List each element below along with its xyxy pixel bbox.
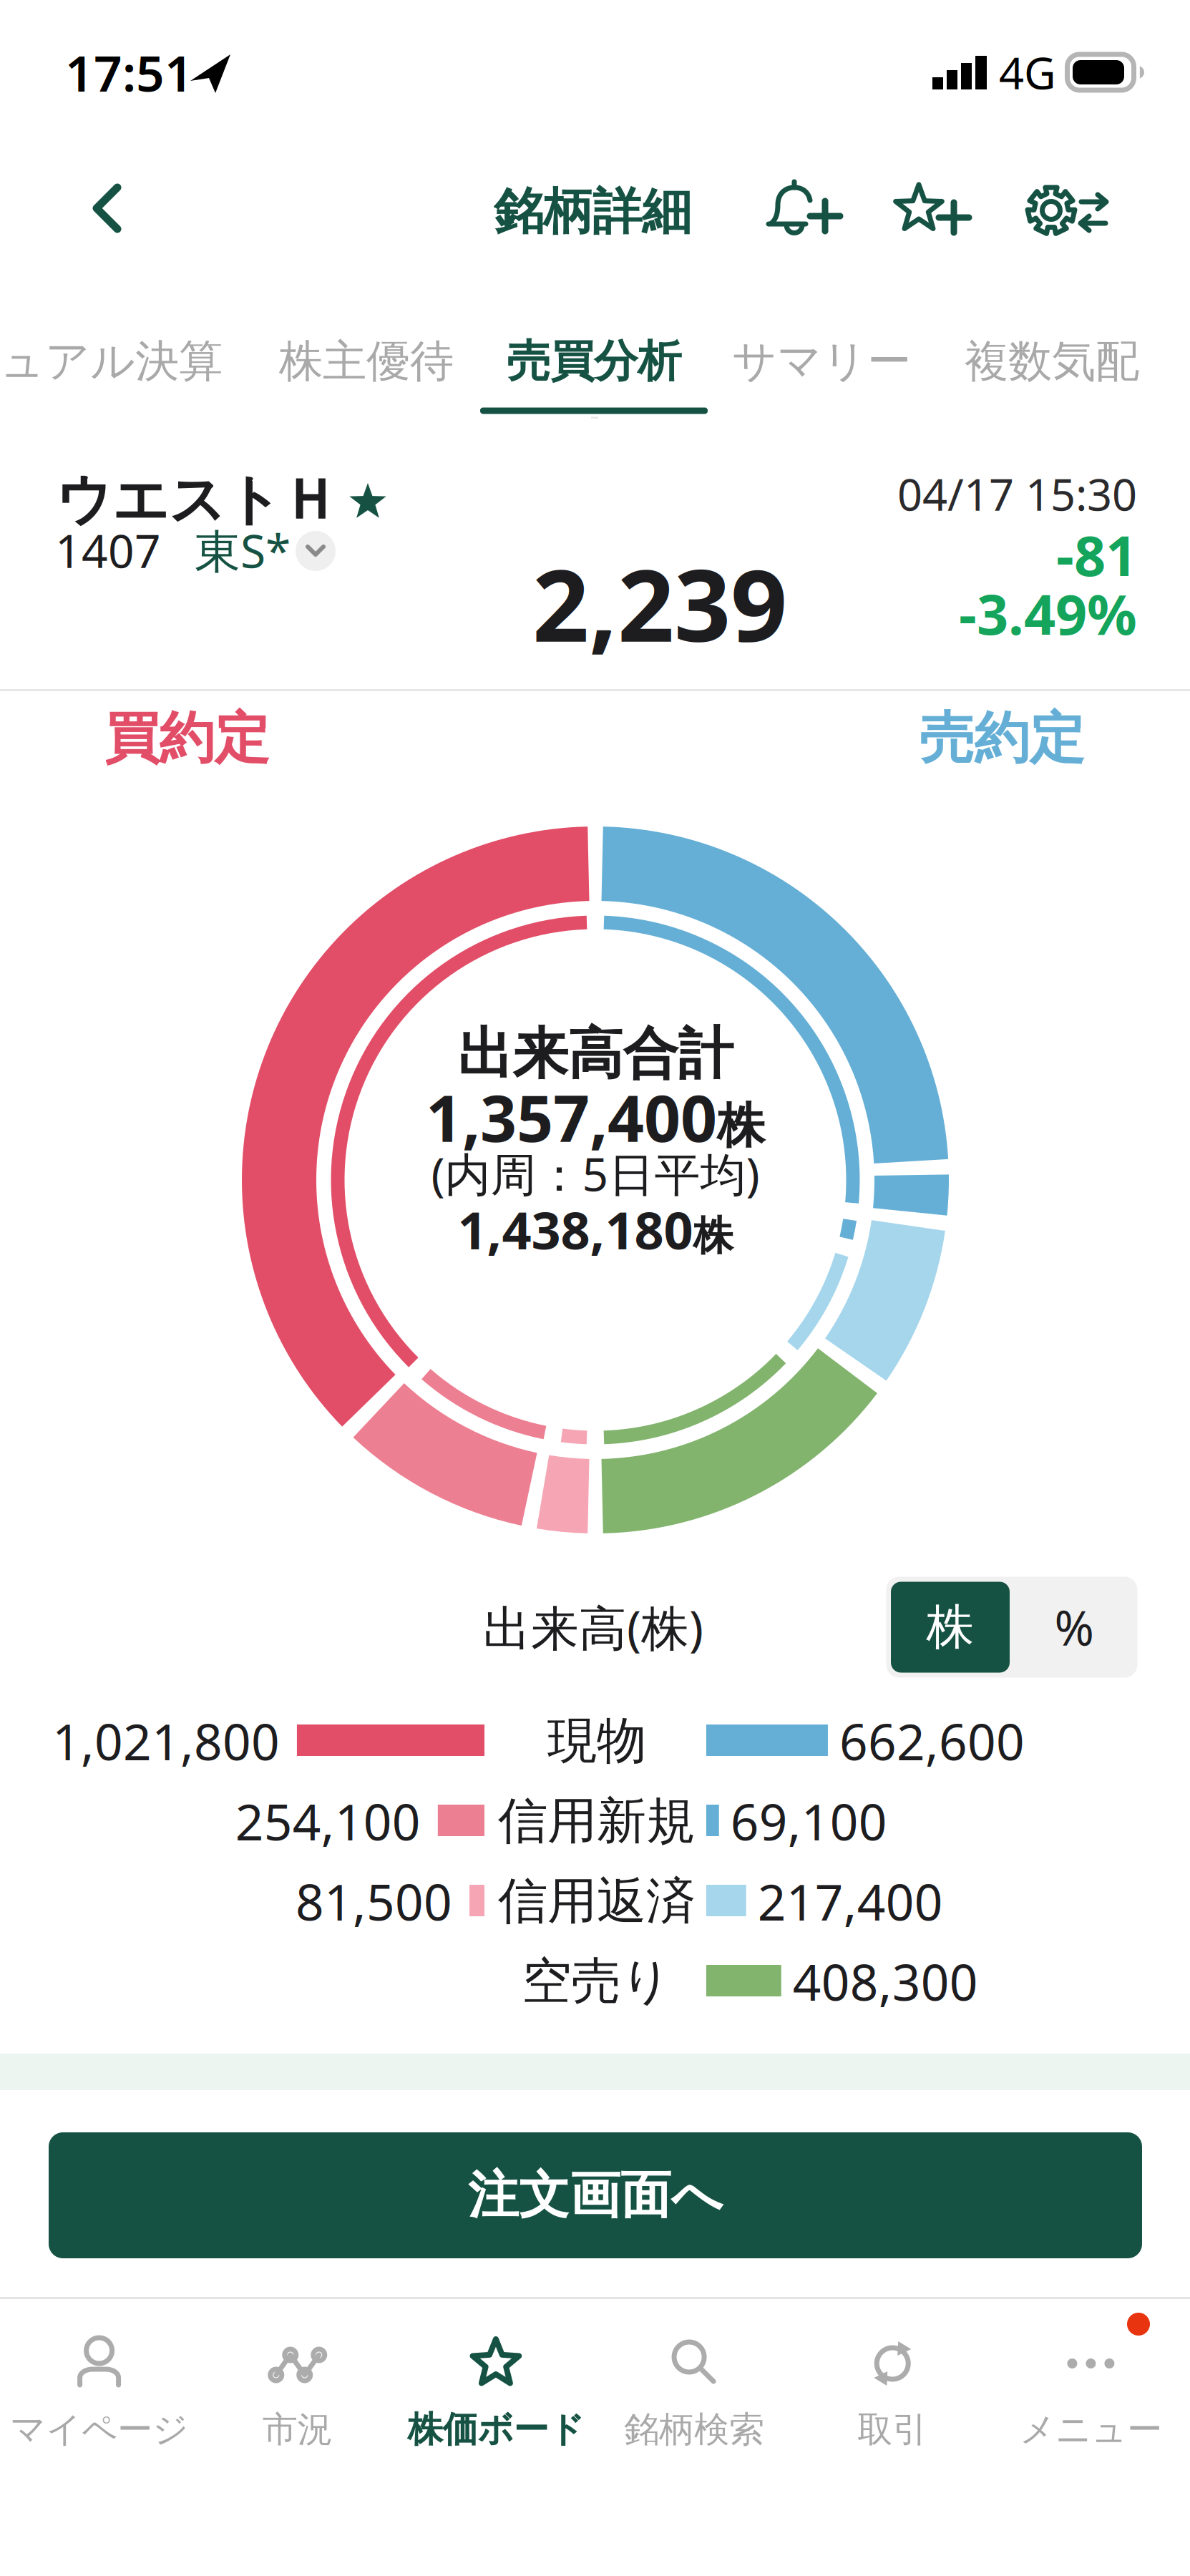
button[interactable]: 株 [891,1582,1010,1673]
staticText: 複数気配 [965,334,1139,388]
button[interactable]: 銘柄詳細 [479,168,706,255]
staticText: 株 [693,1211,733,1261]
staticText: サマリー [732,334,911,388]
button[interactable]: 注文画面へ [49,2132,1142,2258]
button[interactable]: サマリー [721,324,922,398]
staticText: % [1054,1595,1094,1659]
button[interactable]: 設定 [1024,179,1111,245]
staticText: 出来高合計 [458,1020,733,1088]
staticText: 現物 [547,1710,646,1771]
staticText: 408,300 [793,1948,978,2014]
staticText: マイページ [10,2408,188,2451]
staticText: 銘柄検索 [624,2408,764,2451]
staticText: 1,438,180 [458,1195,693,1264]
staticText: 売約定 [919,704,1084,772]
staticText: 信用新規 [498,1791,696,1852]
button[interactable]: アラート追加 [766,179,846,245]
staticText: 81,500 [296,1868,452,1934]
staticText: 2,239 [532,537,787,669]
staticText: ウエストＨ [56,466,337,534]
button[interactable]: メニュー [992,2299,1190,2477]
staticText: 254,100 [235,1788,421,1854]
staticText: 株価ボード [407,2408,584,2451]
staticText: 信用返済 [498,1871,696,1932]
staticText: 東S* [195,520,291,581]
staticText: メニュー [1020,2408,1162,2451]
staticText: 69,100 [730,1788,887,1854]
staticText: 買約定 [104,704,269,772]
button[interactable]: 市況 [198,2299,397,2477]
button[interactable]: 取引 [793,2299,992,2477]
staticText: -81 [1056,518,1137,591]
staticText: 取引 [857,2408,928,2451]
button[interactable]: 銘柄検索 [595,2299,793,2477]
staticText: 市況 [262,2408,333,2451]
button[interactable]: 株主優待 [268,324,465,398]
staticText: (内周：5日平均) [431,1143,760,1204]
button[interactable]: % [1015,1582,1133,1673]
staticText: 1407 [55,520,161,581]
button[interactable]: 戻る [41,169,198,255]
button[interactable]: 株価ボード [397,2299,595,2477]
button[interactable]: 複数気配 [953,324,1151,398]
button[interactable]: マイページ [0,2299,198,2477]
staticText: 1,357,400 [426,1075,717,1159]
staticText: 株 [926,1598,974,1657]
staticText: 662,600 [839,1708,1025,1774]
staticText: 17:51 [65,39,193,105]
staticText: 217,400 [758,1868,943,1934]
button[interactable]: 売買分析 [495,324,693,398]
button[interactable]: お気に入り追加 [893,179,975,245]
button[interactable]: ジュアル決算 [0,324,234,398]
staticText: 空売り [522,1951,672,2012]
staticText: 1,021,800 [52,1708,280,1774]
staticText: ジュアル決算 [0,334,223,388]
staticText: 4G [999,43,1056,101]
staticText: 注文画面へ [468,2164,723,2226]
staticText: -3.49% [959,577,1137,650]
button[interactable]: 市場を変更 [292,527,339,575]
staticText: 売買分析 [507,334,681,388]
staticText: 04/17 15:30 [897,465,1137,523]
staticText: 銘柄詳細 [494,181,691,242]
staticText: 出来高(株) [483,1595,703,1659]
staticText: 株 [717,1097,765,1155]
staticText: 株主優待 [279,334,454,388]
